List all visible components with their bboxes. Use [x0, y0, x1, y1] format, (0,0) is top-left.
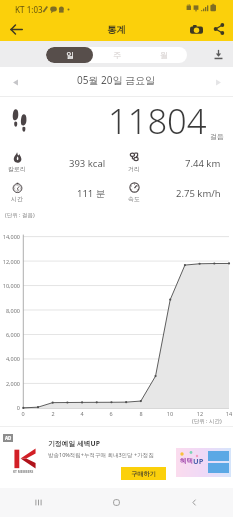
staticText: 속도 — [128, 195, 140, 203]
staticText: 12,000 — [0, 258, 20, 265]
staticText: 10 — [165, 410, 175, 417]
staticText: 6 — [106, 410, 116, 417]
staticText: 11804 — [108, 97, 207, 144]
staticText: KT 1:03 — [15, 4, 43, 15]
button[interactable]: Next day — [207, 71, 229, 93]
staticText: 기정예일 세벽UP — [48, 439, 100, 448]
staticText: 6,000 — [0, 331, 20, 338]
button[interactable]: Share — [208, 18, 230, 40]
staticText: 2.75 km/h — [176, 187, 221, 200]
staticText: 7.44 km — [185, 157, 221, 170]
button[interactable]: Back — [5, 18, 28, 41]
staticText: 8,000 — [0, 307, 20, 314]
staticText: 월 — [160, 50, 168, 60]
button[interactable]: Camera — [185, 18, 207, 40]
staticText: 방송10%적립+누적구매 회내3인당 +가정집 — [48, 451, 154, 459]
button[interactable]: Previous day — [4, 71, 26, 93]
staticText: 12 — [195, 410, 205, 417]
staticText: (단위 : 걸음) — [5, 211, 35, 219]
staticText: 통계 — [107, 24, 126, 36]
staticText: 4 — [77, 410, 87, 417]
staticText: 칼로리 — [8, 165, 26, 173]
staticText: 0 — [18, 410, 28, 417]
staticText: 4,000 — [0, 355, 20, 362]
staticText: 05월 20일 금요일 — [77, 73, 156, 87]
staticText: 일 — [66, 50, 74, 60]
staticText: 14,000 — [0, 233, 20, 240]
staticText: 거리 — [128, 165, 140, 173]
staticText: 111 분 — [77, 187, 106, 200]
staticText: 10,000 — [0, 282, 20, 289]
button[interactable]: Recent apps — [0, 488, 77, 517]
staticText: 혜택 — [180, 457, 193, 465]
staticText: 2,000 — [0, 380, 20, 387]
staticText: AD — [5, 435, 12, 441]
button[interactable]: Back — [155, 488, 233, 517]
button[interactable]: 구매하기 — [121, 467, 166, 480]
staticText: KT MEMBERS — [13, 470, 34, 474]
staticText: (단위 : 시간) — [192, 417, 222, 425]
staticText: UP — [193, 456, 204, 466]
staticText: 걸음 — [210, 132, 224, 141]
button[interactable]: Home — [77, 488, 155, 517]
staticText: 393 kcal — [69, 157, 106, 170]
staticText: 주 — [113, 50, 121, 60]
button[interactable]: 주 — [93, 47, 140, 63]
button[interactable]: 월 — [140, 47, 187, 63]
staticText: 2 — [48, 410, 58, 417]
button[interactable]: Download — [209, 45, 227, 63]
staticText: 0 — [0, 404, 20, 411]
staticText: 8 — [136, 410, 146, 417]
button[interactable]: 일 — [46, 47, 93, 63]
staticText: 시간 — [11, 195, 23, 203]
staticText: 14 — [224, 410, 233, 417]
staticText: 구매하기 — [131, 470, 156, 478]
